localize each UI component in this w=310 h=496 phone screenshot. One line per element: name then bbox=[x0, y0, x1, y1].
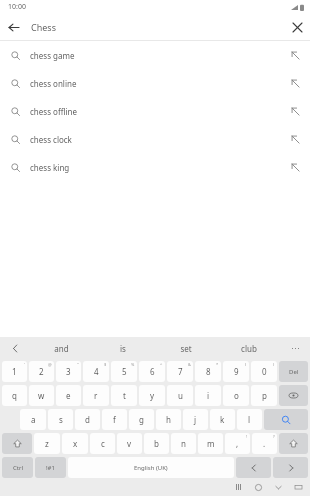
button[interactable]: t bbox=[111, 385, 137, 406]
button[interactable]: English (UK) bbox=[68, 457, 234, 478]
staticText: 0 bbox=[262, 366, 267, 377]
button[interactable]: set bbox=[154, 337, 217, 359]
button[interactable]: Search bbox=[264, 409, 308, 430]
button[interactable]: !#1 bbox=[35, 457, 66, 478]
staticText: 8 bbox=[206, 366, 211, 377]
staticText: 6 bbox=[150, 366, 155, 377]
button[interactable]: chess game bbox=[0, 41, 310, 69]
button[interactable]: c bbox=[90, 433, 115, 454]
staticText: p bbox=[262, 390, 267, 401]
button[interactable]: w bbox=[29, 385, 54, 406]
button[interactable]: . bbox=[252, 433, 277, 454]
button[interactable]: e bbox=[56, 385, 81, 406]
button[interactable]: x bbox=[62, 433, 88, 454]
button[interactable]: 8 bbox=[195, 361, 221, 382]
button[interactable]: a bbox=[20, 409, 46, 430]
staticText: Chess bbox=[31, 21, 284, 33]
button[interactable]: , bbox=[225, 433, 250, 454]
button[interactable]: chess offline bbox=[0, 97, 310, 125]
button[interactable]: r bbox=[83, 385, 109, 406]
staticText: i bbox=[207, 390, 210, 401]
button[interactable]: and bbox=[30, 337, 92, 359]
button[interactable]: Shift bbox=[2, 433, 32, 454]
button[interactable]: chess online bbox=[0, 69, 310, 97]
staticText: g bbox=[139, 414, 144, 425]
button[interactable]: 0 bbox=[251, 361, 277, 382]
staticText: c bbox=[101, 438, 105, 449]
button[interactable]: n bbox=[171, 433, 196, 454]
staticText: y bbox=[150, 390, 155, 401]
button[interactable]: 3 bbox=[56, 361, 81, 382]
staticText: d bbox=[85, 414, 90, 425]
staticText: English (UK) bbox=[134, 464, 168, 472]
button[interactable]: Previous suggestions bbox=[0, 337, 30, 359]
button[interactable]: o bbox=[223, 385, 249, 406]
button[interactable]: p bbox=[251, 385, 277, 406]
button[interactable]: h bbox=[156, 409, 181, 430]
staticText: ( bbox=[245, 362, 247, 367]
button[interactable]: Move cursor left bbox=[236, 457, 271, 478]
staticText: 9 bbox=[234, 366, 239, 377]
staticText: " bbox=[77, 362, 79, 367]
staticText: chess game bbox=[30, 50, 280, 61]
button[interactable]: q bbox=[2, 385, 27, 406]
button[interactable]: 1 bbox=[2, 361, 27, 382]
staticText: 2 bbox=[39, 366, 44, 377]
button[interactable]: Shift bbox=[279, 433, 308, 454]
button[interactable]: Ctrl bbox=[2, 457, 33, 478]
staticText: * bbox=[216, 362, 219, 367]
staticText: j bbox=[194, 414, 197, 425]
button[interactable]: is bbox=[92, 337, 154, 359]
staticText: 3 bbox=[66, 366, 71, 377]
button[interactable]: Insert chess offline bbox=[280, 97, 310, 125]
button[interactable]: 2 bbox=[29, 361, 54, 382]
button[interactable]: Del bbox=[279, 361, 308, 382]
button[interactable]: Home bbox=[252, 481, 264, 493]
button[interactable]: g bbox=[129, 409, 154, 430]
button[interactable]: 4 bbox=[83, 361, 109, 382]
button[interactable]: l bbox=[237, 409, 262, 430]
staticText: 7 bbox=[178, 366, 183, 377]
button[interactable]: f bbox=[102, 409, 127, 430]
button[interactable]: v bbox=[117, 433, 142, 454]
button[interactable]: Back bbox=[0, 14, 26, 40]
button[interactable]: 7 bbox=[167, 361, 193, 382]
staticText: z bbox=[45, 438, 49, 449]
button[interactable]: club bbox=[217, 337, 280, 359]
button[interactable]: 6 bbox=[139, 361, 165, 382]
staticText: s bbox=[59, 414, 63, 425]
button[interactable]: chess clock bbox=[0, 125, 310, 153]
staticText: set bbox=[180, 343, 192, 354]
button[interactable]: Insert chess clock bbox=[280, 125, 310, 153]
button[interactable]: i bbox=[195, 385, 221, 406]
button[interactable]: b bbox=[144, 433, 169, 454]
staticText: ! bbox=[246, 434, 248, 439]
button[interactable]: Insert chess game bbox=[280, 41, 310, 69]
staticText: ^ bbox=[160, 362, 163, 367]
staticText: !#1 bbox=[46, 464, 55, 472]
button[interactable]: Insert chess online bbox=[280, 69, 310, 97]
button[interactable]: 9 bbox=[223, 361, 249, 382]
button[interactable]: u bbox=[167, 385, 193, 406]
button[interactable]: Backspace bbox=[279, 385, 308, 406]
staticText: q bbox=[12, 390, 17, 401]
staticText: u bbox=[178, 390, 183, 401]
button[interactable]: chess king bbox=[0, 153, 310, 181]
button[interactable]: k bbox=[210, 409, 235, 430]
button[interactable]: Hide keyboard bbox=[292, 481, 304, 493]
button[interactable]: Clear bbox=[284, 14, 310, 40]
button[interactable]: m bbox=[198, 433, 223, 454]
staticText: chess online bbox=[30, 78, 280, 89]
button[interactable]: More options bbox=[280, 337, 310, 359]
button[interactable]: Insert chess king bbox=[280, 153, 310, 181]
button[interactable]: s bbox=[48, 409, 73, 430]
button[interactable]: Recents bbox=[232, 481, 244, 493]
button[interactable]: 5 bbox=[111, 361, 137, 382]
button[interactable]: z bbox=[34, 433, 60, 454]
button[interactable]: Move cursor right bbox=[273, 457, 308, 478]
button[interactable]: y bbox=[139, 385, 165, 406]
staticText: . bbox=[263, 438, 266, 449]
button[interactable]: d bbox=[75, 409, 100, 430]
button[interactable]: j bbox=[183, 409, 208, 430]
button[interactable]: Back bbox=[272, 481, 284, 493]
